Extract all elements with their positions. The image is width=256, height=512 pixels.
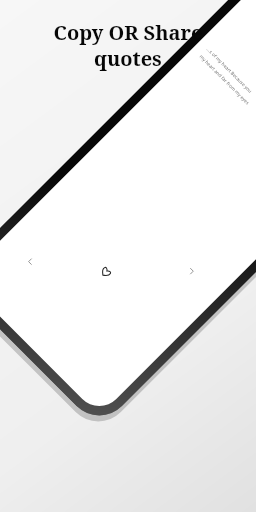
button[interactable]: Copy OR Share quotes	[0, 0, 256, 512]
